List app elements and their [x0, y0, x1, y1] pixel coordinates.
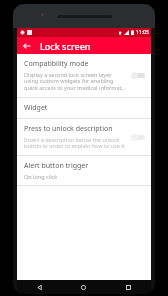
staticText: Alert button trigger [24, 161, 89, 171]
staticText: Insert a description below the unlock bu… [24, 136, 127, 150]
staticText: Compatibility mode [24, 59, 89, 69]
button[interactable]: Press to unlock description [17, 119, 151, 155]
button[interactable]: Toggle [131, 134, 146, 141]
staticText: On long click [24, 173, 58, 180]
button[interactable]: Toggle [131, 72, 146, 79]
staticText: Lock screen [40, 40, 91, 52]
button[interactable]: Compatibility mode [17, 54, 151, 97]
staticText: Display a second lock screen layer using… [24, 71, 127, 92]
button[interactable]: Widget [17, 98, 151, 118]
button[interactable]: Back [20, 39, 34, 53]
staticText: Widget [24, 103, 48, 113]
button[interactable]: Alert button trigger [17, 156, 151, 185]
button[interactable]: Back [17, 280, 61, 294]
button[interactable]: Home [61, 280, 106, 294]
button[interactable]: Recents [106, 280, 151, 294]
staticText: Press to unlock description [24, 124, 113, 134]
staticText: 11:05 [136, 29, 149, 36]
